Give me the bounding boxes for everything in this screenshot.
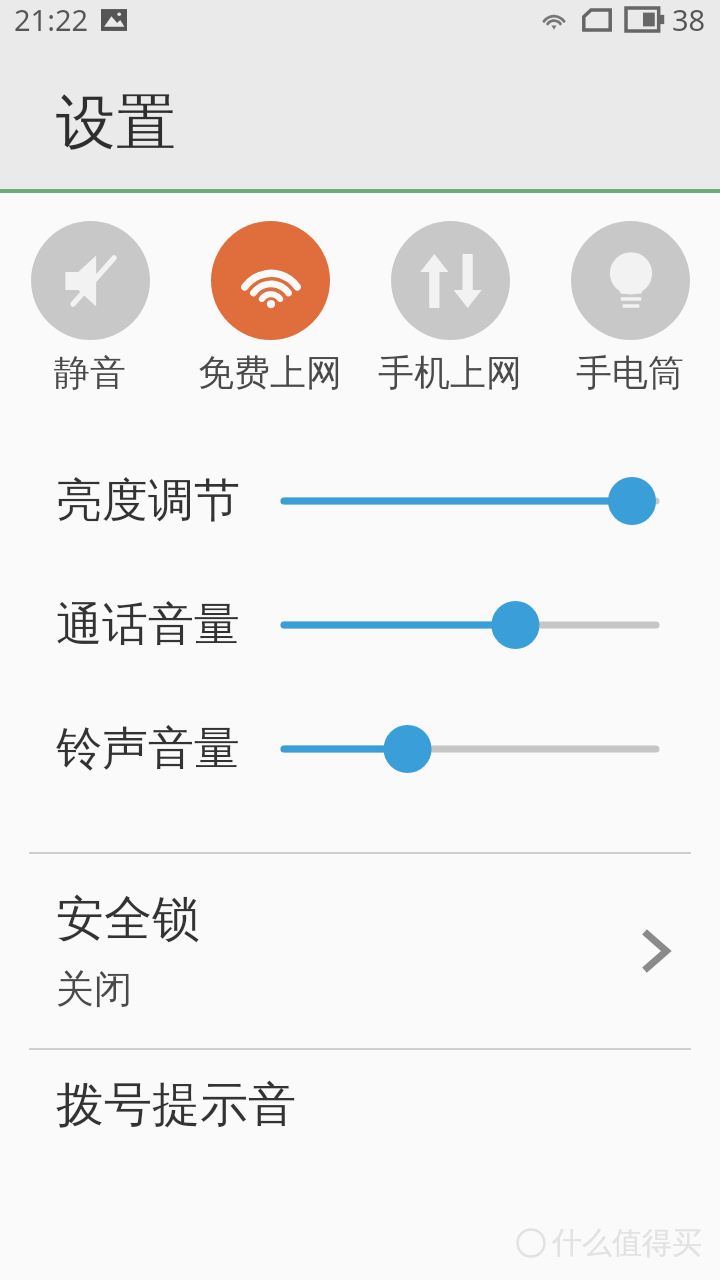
staticText: 静音: [54, 350, 126, 395]
button[interactable]: 手电筒: [540, 221, 720, 395]
button[interactable]: 通话音量: [0, 594, 720, 656]
staticText: 免费上网: [198, 350, 342, 395]
staticText: 21:22: [14, 0, 89, 39]
staticText: 拨号提示音: [56, 1075, 296, 1135]
staticText: 关闭: [56, 965, 132, 1013]
button[interactable]: 手机上网: [360, 221, 540, 395]
button[interactable]: 免费上网: [180, 221, 360, 395]
button[interactable]: 铃声音量: [0, 718, 720, 780]
button[interactable]: 安全锁: [0, 854, 720, 1048]
button[interactable]: 静音: [0, 221, 180, 395]
button[interactable]: 拨号提示音: [0, 1050, 720, 1160]
staticText: 安全锁: [56, 889, 200, 949]
staticText: 铃声音量: [56, 720, 240, 778]
staticText: 设置: [56, 85, 176, 161]
staticText: 什么值得买: [552, 1224, 702, 1262]
staticText: 通话音量: [56, 596, 240, 654]
button[interactable]: 亮度调节: [0, 470, 720, 532]
staticText: 手机上网: [378, 350, 522, 395]
staticText: 手电筒: [576, 350, 684, 395]
staticText: 亮度调节: [56, 472, 240, 530]
staticText: 38: [672, 0, 706, 39]
